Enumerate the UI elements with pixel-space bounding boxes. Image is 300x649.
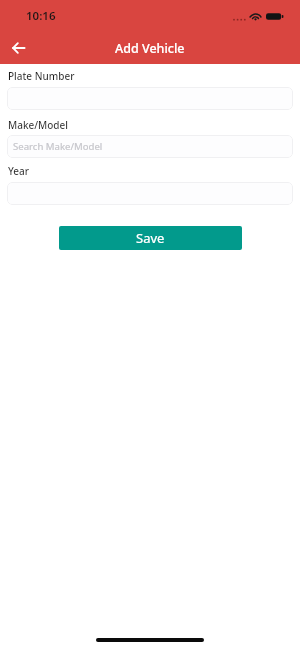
button[interactable]: Save (59, 226, 242, 250)
button[interactable]: Year (7, 182, 293, 205)
staticText: Make/Model (8, 118, 69, 132)
staticText: Year (8, 164, 30, 178)
staticText: Plate Number (8, 69, 75, 83)
button[interactable]: Make/Model (7, 135, 293, 158)
staticText: Search Make/Model (13, 140, 103, 153)
button[interactable]: Plate Number (7, 87, 293, 110)
staticText: Save (136, 229, 165, 247)
staticText: Add Vehicle (115, 40, 185, 57)
staticText: 10:16 (26, 8, 56, 24)
button[interactable]: Back (0, 32, 36, 64)
